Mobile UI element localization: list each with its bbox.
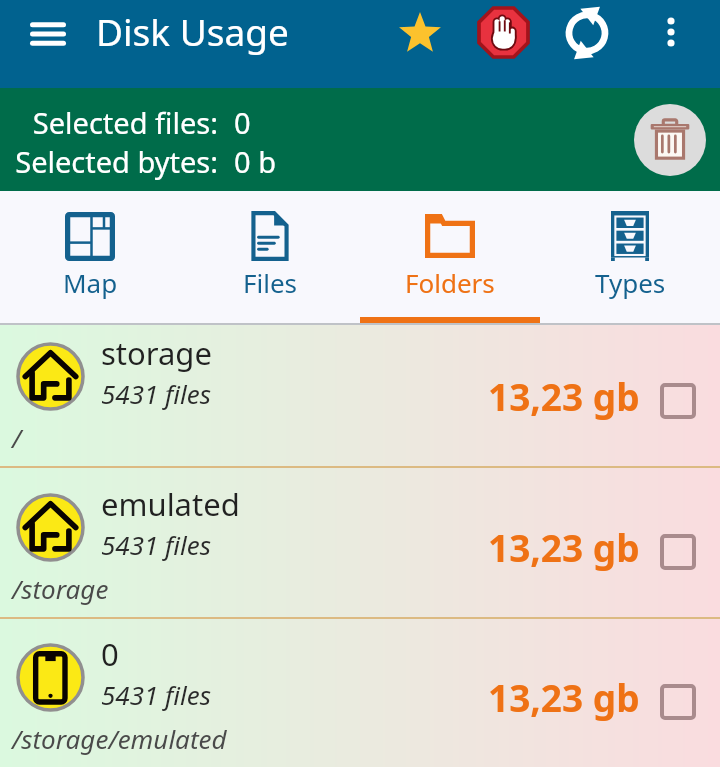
staticText: /storage xyxy=(12,571,109,606)
staticText: Selected files: xyxy=(6,103,218,142)
button[interactable]: Folders xyxy=(360,191,540,325)
button[interactable]: storage xyxy=(0,325,720,466)
button[interactable]: Map xyxy=(0,191,180,325)
staticText: /storage/emulated xyxy=(12,721,227,756)
staticText: 0 xyxy=(234,103,251,142)
staticText: storage xyxy=(101,332,212,374)
staticText: 0 xyxy=(101,633,119,675)
button[interactable]: Select xyxy=(655,378,701,424)
staticText: Types xyxy=(595,265,666,300)
staticText: 5431 files xyxy=(101,527,211,562)
button[interactable]: Stop xyxy=(473,2,533,62)
staticText: 5431 files xyxy=(101,677,211,712)
staticText: Files xyxy=(243,265,298,300)
button[interactable]: Menu xyxy=(15,1,81,67)
button[interactable]: Refresh xyxy=(557,3,617,63)
button[interactable]: Delete xyxy=(634,104,706,176)
button[interactable]: Select xyxy=(655,529,701,575)
staticText: Folders xyxy=(405,265,495,300)
staticText: Map xyxy=(63,265,118,300)
button[interactable]: Types xyxy=(540,191,720,325)
button[interactable]: emulated xyxy=(0,468,720,617)
staticText: Disk Usage xyxy=(96,6,289,56)
button[interactable]: Select xyxy=(655,679,701,725)
button[interactable]: More options xyxy=(644,5,698,59)
staticText: 13,23 gb xyxy=(488,672,640,722)
staticText: 5431 files xyxy=(101,376,211,411)
staticText: 13,23 gb xyxy=(488,522,640,572)
button[interactable]: 0 xyxy=(0,619,720,767)
staticText: emulated xyxy=(101,483,240,525)
staticText: / xyxy=(12,420,22,455)
staticText: 13,23 gb xyxy=(488,371,640,421)
button[interactable]: Files xyxy=(180,191,360,325)
staticText: Selected bytes: xyxy=(6,142,218,181)
button[interactable]: Favorite xyxy=(392,5,448,61)
staticText: 0 b xyxy=(234,142,276,181)
